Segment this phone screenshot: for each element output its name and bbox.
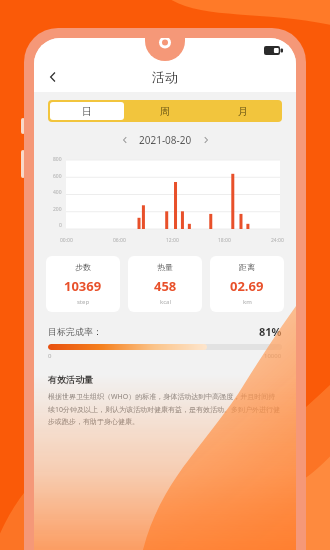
button[interactable]: 月 xyxy=(204,100,282,122)
button[interactable]: 步数 xyxy=(46,256,120,312)
button[interactable]: Next day xyxy=(198,132,214,148)
other: Battery xyxy=(264,46,282,55)
staticText: 02.69 xyxy=(230,277,264,295)
staticText: 600 xyxy=(53,173,62,180)
staticText: 10000 xyxy=(264,352,282,360)
button[interactable]: 热量 xyxy=(128,256,202,312)
staticText: 活动 xyxy=(152,69,178,85)
staticText: 2021-08-20 xyxy=(139,133,192,147)
staticText: 400 xyxy=(53,189,62,196)
button[interactable]: 周 xyxy=(126,100,204,122)
staticText: km xyxy=(243,298,252,306)
staticText: 12:00 xyxy=(166,237,179,244)
staticText: 目标完成率： xyxy=(48,326,102,337)
staticText: 有效活动量 xyxy=(48,374,93,385)
staticText: 24:00 xyxy=(271,237,284,244)
button[interactable]: Back xyxy=(38,62,68,92)
staticText: 步数 xyxy=(75,262,91,272)
staticText: 81% xyxy=(259,324,282,339)
button[interactable]: 距离 xyxy=(210,256,284,312)
staticText: 06:00 xyxy=(113,237,126,244)
staticText: 日 xyxy=(82,105,92,118)
staticText: step xyxy=(77,298,90,306)
staticText: 10369 xyxy=(64,277,102,295)
staticText: 800 xyxy=(53,156,62,163)
button[interactable]: Previous day xyxy=(117,132,133,148)
staticText: 00:00 xyxy=(60,237,73,244)
staticText: 200 xyxy=(53,206,62,213)
button[interactable]: 日 xyxy=(50,102,124,120)
staticText: 0 xyxy=(59,222,62,229)
staticText: 周 xyxy=(160,105,170,118)
staticText: 热量 xyxy=(157,262,173,272)
staticText: 18:00 xyxy=(218,237,231,244)
staticText: 根据世界卫生组织（WHO）的标准，身体活动达到中高强度，并且时间持续10分钟及以… xyxy=(48,392,282,426)
staticText: 458 xyxy=(154,277,177,295)
staticText: 月 xyxy=(238,105,248,118)
staticText: kcal xyxy=(160,298,171,306)
staticText: 距离 xyxy=(239,262,255,272)
staticText: 0 xyxy=(48,352,52,360)
